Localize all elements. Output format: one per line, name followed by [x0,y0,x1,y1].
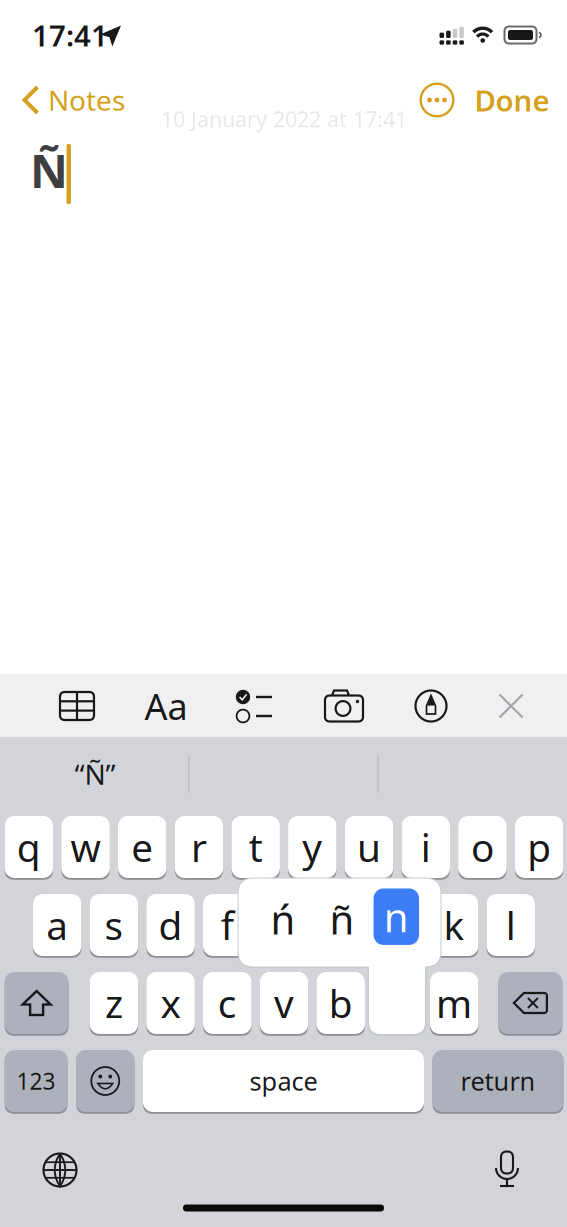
button[interactable]: n [373,972,422,1034]
staticText: g [272,899,296,951]
button[interactable]: s [90,894,138,956]
button[interactable]: f [203,894,252,956]
staticText: q [17,821,41,873]
button[interactable]: i [401,816,450,878]
staticText: m [436,977,472,1029]
button[interactable]: return [432,1050,563,1112]
button[interactable]: ń [255,879,311,959]
staticText: Notes [48,81,125,119]
button[interactable]: n [374,888,419,945]
button[interactable]: z [90,972,138,1034]
staticText: z [105,977,123,1029]
staticText: v [274,977,294,1029]
button[interactable]: Table [49,678,105,734]
staticText: b [329,977,353,1029]
staticText: t [249,821,263,873]
staticText: Ñ [30,139,68,201]
staticText: k [444,899,465,951]
staticText: p [527,821,551,873]
button[interactable]: “Ñ” [5,741,185,807]
staticText: c [218,977,237,1029]
button[interactable]: ñ [314,879,370,959]
button[interactable]: j [373,894,422,956]
staticText: ń [270,892,295,945]
button[interactable]: o [458,816,507,878]
staticText: y [302,821,322,873]
button[interactable]: m [430,972,478,1034]
button[interactable]: Close [483,678,539,734]
button[interactable]: x [146,972,195,1034]
button[interactable]: q [5,816,53,878]
staticText: w [71,821,101,873]
button[interactable]: y [288,816,337,878]
button[interactable]: r [175,816,223,878]
button[interactable]: Camera [316,678,372,734]
staticText: n [384,890,409,943]
staticText: x [161,977,181,1029]
button[interactable]: Dictate [479,1141,535,1197]
button[interactable]: p [515,816,563,878]
button[interactable]: Done [457,76,567,124]
staticText: d [159,899,183,951]
staticText: i [421,821,431,873]
button[interactable]: Delete [498,972,562,1034]
button[interactable]: Next keyboard [32,1142,88,1198]
button[interactable]: Emoji [76,1050,134,1112]
staticText: ñ [329,892,354,945]
staticText: Aa [144,682,187,730]
button[interactable]: space [143,1050,424,1112]
button[interactable]: Formatting [138,678,194,734]
staticText: o [471,821,494,873]
staticText: h [329,899,353,951]
staticText: 17:41 [32,15,108,54]
staticText: return [460,1064,535,1098]
staticText: 123 [17,1066,56,1096]
button[interactable]: 123 [5,1050,68,1112]
button[interactable]: Markup [403,678,459,734]
button[interactable]: g [260,894,308,956]
button[interactable]: w [61,816,110,878]
staticText: r [191,821,207,873]
button[interactable]: a [33,894,81,956]
button[interactable]: Checklist [227,678,283,734]
staticText: f [221,899,234,951]
button[interactable]: b [316,972,365,1034]
staticText: l [506,899,516,951]
staticText: a [46,899,68,951]
button[interactable]: l [487,894,535,956]
staticText: Done [474,80,549,119]
button[interactable]: k [430,894,478,956]
button[interactable]: e [118,816,166,878]
staticText: s [104,899,123,951]
button[interactable]: c [203,972,252,1034]
staticText: “Ñ” [74,755,115,793]
button[interactable]: u [345,816,393,878]
button[interactable]: h [316,894,365,956]
button[interactable]: More [415,78,459,122]
button[interactable]: Back to Notes [23,81,125,119]
staticText: 10 January 2022 at 17:41 [161,105,407,133]
button[interactable]: Shift [5,972,69,1034]
button[interactable]: t [231,816,280,878]
button[interactable]: d [146,894,195,956]
staticText: j [392,899,402,951]
staticText: e [131,821,153,873]
staticText: u [357,821,381,873]
button[interactable]: v [260,972,308,1034]
staticText: space [249,1064,317,1098]
